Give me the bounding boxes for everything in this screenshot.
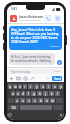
staticText: k bbox=[51, 92, 53, 96]
button[interactable]: s bbox=[16, 91, 20, 96]
button[interactable]: Template bbox=[30, 76, 35, 81]
staticText: a bbox=[12, 92, 14, 96]
button[interactable]: a bbox=[11, 91, 15, 96]
button[interactable]: w bbox=[13, 84, 17, 89]
staticText: z bbox=[16, 99, 18, 103]
button[interactable]: j bbox=[43, 91, 48, 96]
staticText: b bbox=[40, 99, 42, 103]
staticText: t bbox=[30, 85, 31, 89]
staticText: d bbox=[22, 92, 24, 96]
button[interactable]: More bbox=[45, 76, 50, 81]
staticText: f bbox=[28, 92, 29, 96]
staticText: Type a message bbox=[11, 70, 54, 74]
button[interactable]: l bbox=[55, 91, 60, 96]
button[interactable]: Jason Anderson bbox=[19, 15, 44, 21]
staticText: c bbox=[28, 99, 30, 103]
staticText: Hey, Jason! This is Eric from X Off Road… bbox=[11, 28, 60, 44]
staticText: u bbox=[42, 85, 44, 89]
button[interactable]: Call bbox=[44, 15, 52, 22]
button[interactable] bbox=[10, 15, 17, 22]
button[interactable]: x bbox=[20, 98, 25, 103]
staticText: Hi Eric, I just need a leveling kit and … bbox=[11, 55, 53, 63]
staticText: Send bbox=[54, 77, 61, 81]
button[interactable]: Emoji bbox=[23, 76, 28, 81]
button[interactable]: k bbox=[49, 91, 54, 96]
button[interactable]: Numbers bbox=[8, 105, 19, 110]
staticText: 9:41 bbox=[11, 7, 17, 11]
button[interactable]: b bbox=[38, 98, 43, 103]
staticText: e bbox=[19, 85, 21, 89]
staticText: h bbox=[39, 92, 41, 96]
staticText: i bbox=[48, 85, 49, 89]
button[interactable]: c bbox=[26, 98, 31, 103]
button[interactable]: e bbox=[18, 84, 22, 89]
button[interactable]: m bbox=[50, 98, 55, 103]
staticText: o bbox=[54, 85, 56, 89]
staticText: Delivered bbox=[50, 45, 60, 48]
button[interactable]: Contact avatar bbox=[57, 60, 62, 65]
button[interactable]: q bbox=[8, 84, 12, 89]
button[interactable]: p bbox=[58, 84, 63, 89]
staticText: 123 bbox=[11, 106, 16, 110]
staticText: l bbox=[57, 92, 58, 96]
staticText: v bbox=[34, 99, 36, 103]
staticText: y bbox=[36, 85, 38, 89]
staticText: m bbox=[51, 99, 54, 103]
staticText: p bbox=[60, 85, 62, 89]
staticText: w bbox=[14, 85, 17, 89]
staticText: g bbox=[33, 92, 35, 96]
button[interactable]: g bbox=[31, 91, 36, 96]
button[interactable]: t bbox=[28, 84, 33, 89]
button[interactable]: z bbox=[15, 98, 19, 103]
staticText: 0/160 bbox=[54, 70, 60, 73]
button[interactable]: Type a message bbox=[9, 69, 62, 74]
button[interactable]: Send bbox=[52, 76, 62, 81]
staticText: n bbox=[46, 99, 48, 103]
button[interactable]: Hi Eric, I just need a leveling kit and … bbox=[9, 53, 55, 65]
button[interactable]: y bbox=[34, 84, 39, 89]
staticText: j bbox=[45, 92, 46, 96]
button[interactable]: n bbox=[44, 98, 49, 103]
staticText: s bbox=[17, 92, 19, 96]
button[interactable]: Image bbox=[16, 76, 21, 81]
staticText: q bbox=[9, 85, 11, 89]
button[interactable]: Dictation bbox=[59, 113, 63, 117]
button[interactable]: d bbox=[21, 91, 25, 96]
staticText: r bbox=[24, 85, 26, 89]
staticText: Jason Anderson bbox=[19, 15, 44, 19]
button[interactable]: r bbox=[23, 84, 27, 89]
button[interactable]: h bbox=[37, 91, 42, 96]
button[interactable]: Emoji keyboard bbox=[8, 113, 12, 117]
button[interactable]: o bbox=[52, 84, 57, 89]
staticText: x bbox=[22, 99, 24, 103]
button[interactable]: f bbox=[26, 91, 30, 96]
button[interactable]: Details bbox=[54, 15, 61, 22]
button[interactable]: v bbox=[32, 98, 37, 103]
button[interactable]: Hey, Jason! This is Eric from X Off Road… bbox=[9, 26, 62, 50]
button[interactable]: u bbox=[40, 84, 45, 89]
button[interactable]: Attach bbox=[9, 76, 14, 81]
button[interactable]: i bbox=[46, 84, 51, 89]
